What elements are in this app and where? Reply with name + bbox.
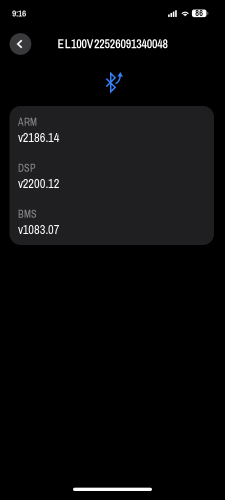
staticText: DSP [18,161,36,175]
staticText: v1083.07 [18,221,60,238]
staticText: v2186.14 [18,129,60,146]
button[interactable]: Back [9,33,31,55]
staticText: 9:16 [12,7,26,19]
staticText: 86 [195,8,203,19]
staticText: EL100V22526091340048 [57,36,167,52]
staticText: ARM [18,115,37,129]
staticText: BMS [18,207,37,221]
staticText: v2200.12 [18,175,60,192]
